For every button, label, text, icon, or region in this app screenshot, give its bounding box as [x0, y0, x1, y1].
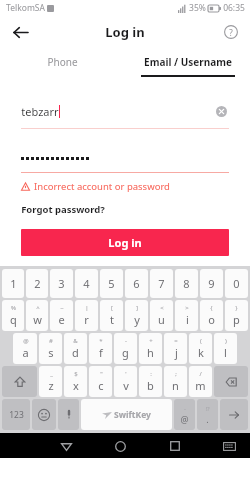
button[interactable]: Home — [109, 435, 131, 457]
staticText: f — [99, 345, 103, 360]
staticText: TelkomSA — [6, 2, 45, 14]
staticText: m — [195, 378, 206, 393]
staticText: n — [172, 378, 179, 393]
staticText: z — [48, 378, 54, 393]
staticText: 5 — [108, 276, 115, 291]
staticText: o — [208, 312, 215, 327]
staticText: @ — [180, 413, 189, 425]
button[interactable]: Help — [220, 21, 242, 43]
staticText: Forgot password? — [21, 203, 105, 216]
staticText: @ — [23, 337, 29, 345]
staticText: r — [84, 312, 89, 327]
button[interactable]: [ — [100, 300, 123, 331]
button[interactable]: 9 — [200, 269, 223, 298]
staticText: !? — [205, 405, 210, 413]
button[interactable]: } — [225, 300, 248, 331]
button[interactable]: Voice input — [58, 399, 79, 430]
button[interactable]: * — [89, 333, 112, 364]
button[interactable]: - — [114, 333, 137, 364]
button[interactable]: ) — [214, 333, 237, 364]
button[interactable]: ^ — [26, 300, 48, 331]
staticText: c — [98, 378, 104, 393]
staticText: 123 — [9, 409, 24, 421]
staticText: k — [198, 345, 204, 360]
staticText: " — [100, 370, 103, 378]
button[interactable]: !? — [197, 399, 218, 430]
button[interactable]: # — [39, 333, 62, 364]
button[interactable]: 3 — [50, 269, 73, 298]
button[interactable]: Shift — [2, 366, 37, 397]
button[interactable]: Backspace — [214, 366, 248, 397]
staticText: + — [149, 337, 153, 345]
button[interactable]: " — [89, 366, 112, 397]
button[interactable]: Clear — [213, 103, 229, 119]
staticText: < — [160, 304, 164, 312]
staticText: ? — [229, 27, 233, 38]
staticText: ] — [136, 304, 138, 312]
button[interactable]: @ — [13, 333, 37, 364]
button[interactable]: _ — [39, 366, 62, 397]
button[interactable]: Emoji — [32, 399, 56, 430]
button[interactable]: 4 — [75, 269, 98, 298]
button[interactable]: Recents — [164, 435, 186, 457]
button[interactable]: ( — [189, 333, 212, 364]
button[interactable]: Log in — [21, 229, 229, 256]
button[interactable]: 7 — [150, 269, 173, 298]
button[interactable]: > — [175, 300, 198, 331]
button[interactable]: Phone — [0, 48, 125, 75]
staticText: g — [122, 345, 129, 360]
button[interactable]: 0 — [225, 269, 248, 298]
button[interactable]: ; — [164, 366, 187, 397]
staticText: ; — [175, 370, 177, 378]
button[interactable]: < — [150, 300, 173, 331]
button[interactable]: ] — [125, 300, 148, 331]
button[interactable]: | — [75, 300, 98, 331]
button[interactable]: & — [64, 333, 87, 364]
staticText: Log in — [105, 23, 145, 41]
button[interactable]: Forgot password? — [21, 203, 105, 216]
button[interactable]: Enter — [220, 399, 248, 430]
staticText: v — [123, 378, 129, 393]
button[interactable]: { — [200, 300, 223, 331]
button[interactable]: 5 — [100, 269, 123, 298]
staticText: SwiftKey — [114, 409, 151, 421]
staticText: / — [199, 370, 202, 378]
staticText: ^ — [36, 304, 40, 312]
button[interactable]: : — [139, 366, 162, 397]
staticText: q — [10, 312, 17, 327]
staticText: Incorrect account or password — [34, 180, 170, 193]
button[interactable]: Back — [8, 20, 32, 44]
button[interactable]: 1 — [2, 269, 24, 298]
button[interactable]: Hide keyboard — [218, 435, 240, 457]
staticText: l — [224, 345, 227, 360]
staticText: & — [73, 337, 78, 345]
button[interactable]: SwiftKey — [81, 399, 172, 430]
button[interactable]: Back — [55, 435, 77, 457]
staticText: j — [175, 345, 178, 360]
button[interactable]: $ — [64, 366, 87, 397]
staticText: $ — [74, 370, 78, 378]
staticText: Log in — [108, 235, 142, 250]
staticText: 3 — [58, 276, 65, 291]
button[interactable]: 123 — [2, 399, 30, 430]
button[interactable]: % — [2, 300, 24, 331]
button[interactable]: - — [174, 399, 195, 430]
staticText: 7 — [158, 276, 165, 291]
staticText: d — [72, 345, 79, 360]
button[interactable]: = — [164, 333, 187, 364]
button[interactable]: 6 — [125, 269, 148, 298]
button[interactable]: 2 — [26, 269, 48, 298]
button[interactable]: ' — [114, 366, 137, 397]
staticText: ~ — [60, 304, 64, 312]
button[interactable]: / — [189, 366, 212, 397]
button[interactable]: 8 — [175, 269, 198, 298]
staticText: ( — [200, 337, 202, 345]
button[interactable]: + — [139, 333, 162, 364]
staticText: a — [22, 345, 29, 360]
staticText: 06:35 — [223, 2, 245, 14]
button[interactable]: Email / Username — [125, 48, 250, 75]
staticText: u — [158, 312, 165, 327]
staticText: ) — [225, 337, 227, 345]
staticText: . — [206, 413, 209, 425]
button[interactable]: ~ — [50, 300, 73, 331]
